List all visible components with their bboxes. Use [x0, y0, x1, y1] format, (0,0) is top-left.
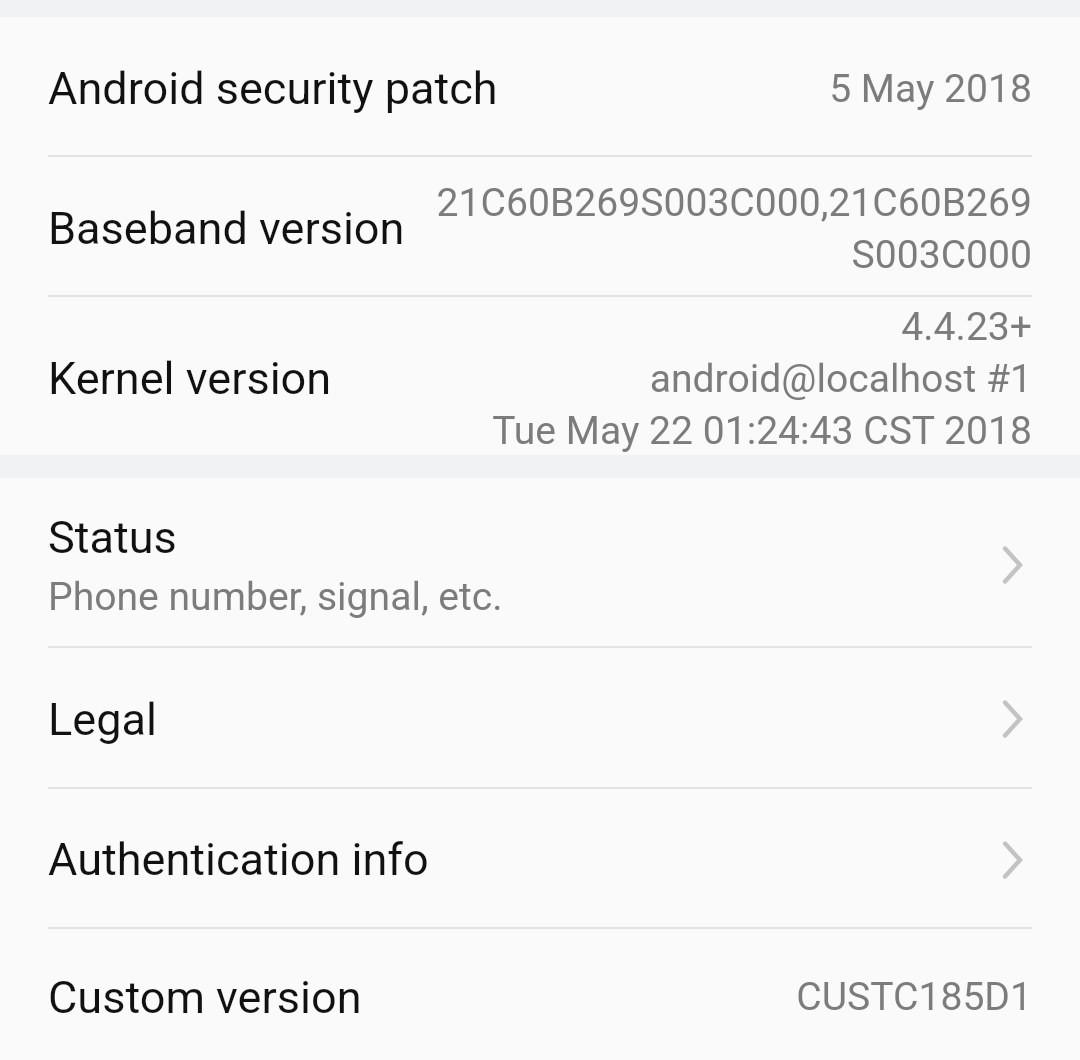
staticText: 4.4.23+ android@localhost #1 Tue May 22 …: [492, 304, 1032, 453]
staticText: Phone number, signal, etc.: [48, 574, 503, 620]
staticText: Custom version: [48, 971, 362, 1024]
other: Authentication info: [1002, 840, 1023, 880]
staticText: 21C60B269S003C000,21C60B269 S003C000: [436, 180, 1032, 277]
button[interactable]: Kernel version: [0, 297, 1080, 455]
button[interactable]: Legal: [0, 648, 1080, 787]
staticText: Status: [48, 511, 177, 564]
staticText: 5 May 2018: [829, 66, 1032, 112]
other: Status: [1002, 545, 1023, 585]
staticText: CUSTC185D1: [796, 974, 1032, 1020]
button[interactable]: Custom version: [0, 929, 1080, 1060]
staticText: Android security patch: [48, 62, 498, 115]
button[interactable]: Authentication info: [0, 789, 1080, 927]
staticText: Kernel version: [48, 352, 332, 405]
button[interactable]: Baseband version: [0, 157, 1080, 295]
button[interactable]: Android security patch: [0, 17, 1080, 155]
staticText: Legal: [48, 693, 157, 746]
button[interactable]: Status: [0, 478, 1080, 646]
staticText: Authentication info: [48, 833, 429, 886]
other: Legal: [1002, 699, 1023, 739]
staticText: Baseband version: [48, 202, 405, 255]
